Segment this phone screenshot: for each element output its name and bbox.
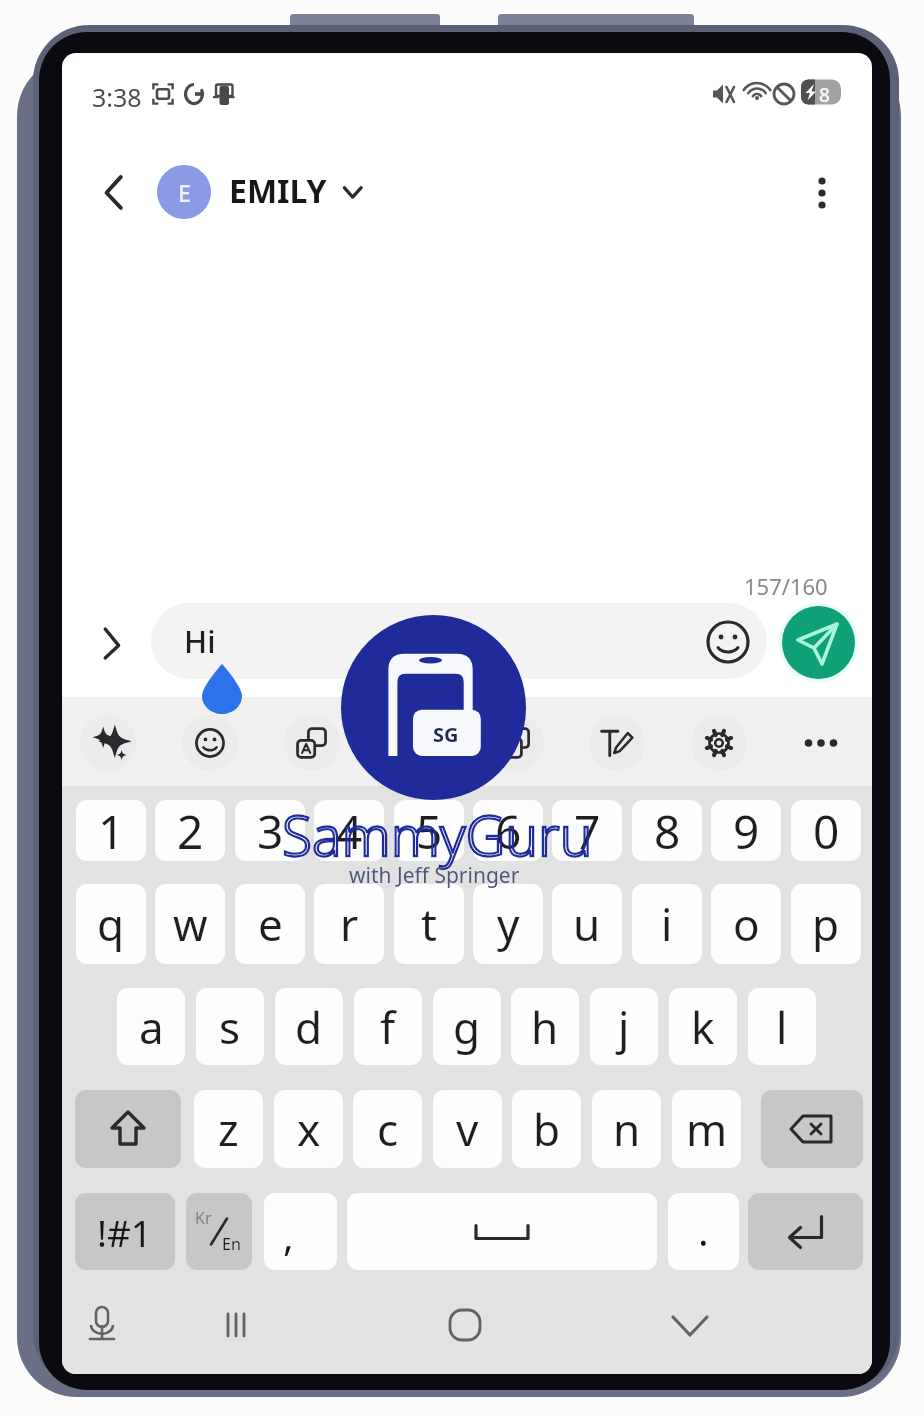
button[interactable]: More	[793, 715, 849, 771]
staticText: 9	[733, 800, 760, 861]
button[interactable]: E	[157, 165, 211, 219]
button[interactable]: Shift	[75, 1090, 181, 1168]
staticText: with Jeff Springer	[349, 861, 520, 890]
button[interactable]: Change language	[186, 1193, 252, 1270]
button[interactable]: Recent apps	[202, 1291, 270, 1359]
staticText: h	[531, 997, 559, 1057]
staticText: ,	[283, 1208, 294, 1262]
staticText: 4	[336, 800, 363, 861]
button[interactable]: Handwriting	[589, 715, 645, 771]
button[interactable]: e	[235, 884, 305, 964]
button[interactable]: u	[552, 884, 622, 964]
button[interactable]: 1	[76, 800, 146, 861]
staticText: m	[686, 1099, 728, 1159]
staticText: e	[258, 894, 283, 954]
button[interactable]: Translate	[284, 715, 340, 771]
staticText: En	[222, 1233, 241, 1255]
staticText: 6	[495, 800, 522, 861]
button[interactable]: 7	[552, 800, 622, 861]
button[interactable]: d	[275, 988, 343, 1065]
button[interactable]: 2	[155, 800, 225, 861]
staticText: w	[173, 894, 208, 954]
button[interactable]: w	[155, 884, 225, 964]
staticText: 3:38	[92, 80, 142, 114]
staticText: r	[340, 894, 359, 954]
button[interactable]: Expand contact	[334, 175, 370, 211]
button[interactable]: l	[748, 988, 816, 1065]
button[interactable]: 5	[394, 800, 464, 861]
staticText: x	[297, 1099, 321, 1159]
staticText: q	[97, 894, 125, 954]
button[interactable]: r	[314, 884, 384, 964]
button[interactable]: Send	[782, 606, 855, 679]
staticText: s	[219, 997, 241, 1057]
staticText: .	[698, 1203, 709, 1257]
button[interactable]: c	[353, 1090, 422, 1168]
button[interactable]: Home	[431, 1291, 499, 1359]
button[interactable]: i	[632, 884, 702, 964]
button[interactable]: EMILY	[229, 169, 327, 213]
button[interactable]: m	[672, 1090, 741, 1168]
button[interactable]: x	[274, 1090, 343, 1168]
staticText: Hi	[184, 620, 216, 662]
button[interactable]: h	[511, 988, 579, 1065]
button[interactable]: a	[117, 988, 185, 1065]
staticText: v	[456, 1099, 479, 1159]
staticText: 8	[654, 800, 681, 861]
staticText: i	[661, 894, 673, 954]
button[interactable]: v	[433, 1090, 502, 1168]
button[interactable]: More options	[788, 159, 856, 227]
button[interactable]: Back	[79, 158, 147, 226]
button[interactable]: Sticker	[386, 715, 442, 771]
staticText: c	[377, 1099, 399, 1159]
staticText: k	[691, 997, 715, 1057]
button[interactable]: !#1	[75, 1193, 175, 1270]
button[interactable]: n	[592, 1090, 661, 1168]
button[interactable]: f	[354, 988, 422, 1065]
button[interactable]: z	[194, 1090, 263, 1168]
button[interactable]: ,	[264, 1193, 337, 1270]
staticText: 2	[177, 800, 204, 861]
staticText: z	[218, 1099, 239, 1159]
staticText: n	[613, 1099, 641, 1159]
staticText: d	[295, 997, 323, 1057]
button[interactable]: Space	[347, 1193, 657, 1270]
button[interactable]: Settings	[691, 715, 747, 771]
button[interactable]: 4	[314, 800, 384, 861]
button[interactable]: Emoji	[698, 612, 758, 672]
button[interactable]: t	[394, 884, 464, 964]
button[interactable]: Emoji	[182, 715, 238, 771]
staticText: t	[421, 894, 437, 954]
button[interactable]: 0	[791, 800, 861, 861]
button[interactable]: Voice input	[68, 1291, 136, 1359]
button[interactable]: j	[590, 988, 658, 1065]
button[interactable]: Show more options	[82, 611, 144, 673]
button[interactable]: p	[791, 884, 861, 964]
button[interactable]: 3	[235, 800, 305, 861]
button[interactable]: Backspace	[761, 1090, 863, 1168]
button[interactable]: .	[668, 1193, 739, 1270]
button[interactable]: g	[433, 988, 501, 1065]
button[interactable]: b	[512, 1090, 581, 1168]
button[interactable]: o	[711, 884, 781, 964]
button[interactable]: q	[76, 884, 146, 964]
button[interactable]: 8	[632, 800, 702, 861]
staticText: l	[776, 997, 788, 1057]
button[interactable]: Enter	[748, 1193, 863, 1270]
button[interactable]: 6	[473, 800, 543, 861]
button[interactable]: Clipboard	[488, 715, 544, 771]
button[interactable]: Hide keyboard	[656, 1291, 724, 1359]
staticText: E	[178, 177, 191, 208]
button[interactable]: 9	[711, 800, 781, 861]
staticText: 8	[819, 82, 830, 108]
button[interactable]: y	[473, 884, 543, 964]
button[interactable]: k	[669, 988, 737, 1065]
staticText: SG	[433, 721, 459, 748]
button[interactable]: AI suggest	[80, 715, 136, 771]
button[interactable]: Hi	[151, 603, 767, 679]
staticText: 3	[257, 800, 284, 861]
staticText: g	[453, 997, 481, 1057]
staticText: o	[733, 894, 760, 954]
staticText: f	[380, 997, 396, 1057]
button[interactable]: s	[196, 988, 264, 1065]
